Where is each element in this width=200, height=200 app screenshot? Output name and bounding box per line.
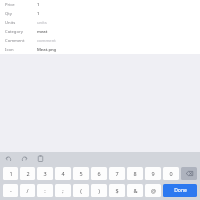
staticText: ( <box>80 187 82 194</box>
button[interactable]: ; <box>55 184 71 197</box>
button[interactable]: Done <box>163 184 197 197</box>
staticText: Comment <box>5 38 37 44</box>
staticText: 5 <box>79 170 83 177</box>
button[interactable]: ( <box>73 184 89 197</box>
button[interactable]: Undo <box>4 154 13 163</box>
staticText: Category <box>5 29 37 35</box>
button[interactable]: 7 <box>109 167 125 180</box>
staticText: 1 <box>9 170 13 177</box>
staticText: 9 <box>151 170 155 177</box>
staticText: @ <box>151 187 156 194</box>
button[interactable]: 4 <box>55 167 71 180</box>
button[interactable]: : <box>37 184 53 197</box>
button[interactable]: 5 <box>73 167 89 180</box>
button[interactable]: Units <box>0 18 200 27</box>
staticText: 6 <box>97 170 101 177</box>
button[interactable]: Redo <box>20 154 29 163</box>
button[interactable]: Icon <box>0 45 200 54</box>
staticText: / <box>26 187 29 194</box>
button[interactable]: 9 <box>145 167 161 180</box>
staticText: 7 <box>115 170 119 177</box>
staticText: 3 <box>43 170 47 177</box>
button[interactable]: Category <box>0 27 200 36</box>
staticText: - <box>10 187 12 194</box>
staticText: 8 <box>133 170 137 177</box>
button[interactable]: ) <box>91 184 107 197</box>
staticText: Qty <box>5 11 37 17</box>
button[interactable]: Price <box>0 0 200 9</box>
staticText: Meat.png <box>37 47 57 53</box>
button[interactable]: Qty <box>0 9 200 18</box>
staticText: & <box>133 187 138 194</box>
button[interactable]: & <box>127 184 143 197</box>
button[interactable]: Backspace <box>181 167 197 180</box>
button[interactable]: Comment <box>0 36 200 45</box>
button[interactable]: 2 <box>20 167 35 180</box>
staticText: 0 <box>169 170 173 177</box>
button[interactable]: @ <box>145 184 161 197</box>
staticText: ) <box>98 187 100 194</box>
staticText: meat <box>37 29 48 35</box>
button[interactable]: $ <box>109 184 125 197</box>
staticText: Units <box>5 20 37 26</box>
button[interactable]: Paste <box>36 154 45 163</box>
staticText: $ <box>115 187 119 194</box>
staticText: 1 <box>37 2 40 8</box>
button[interactable]: 6 <box>91 167 107 180</box>
button[interactable]: 0 <box>163 167 179 180</box>
button[interactable]: / <box>20 184 35 197</box>
button[interactable]: - <box>3 184 18 197</box>
staticText: 2 <box>26 170 30 177</box>
staticText: 4 <box>61 170 65 177</box>
staticText: Price <box>5 2 37 8</box>
staticText: Icon <box>5 47 37 53</box>
button[interactable]: 8 <box>127 167 143 180</box>
staticText: comment <box>37 38 56 44</box>
staticText: units <box>37 20 47 26</box>
staticText: Done <box>174 187 187 194</box>
staticText: ; <box>62 187 64 194</box>
staticText: : <box>44 187 46 194</box>
staticText: 1 <box>37 11 40 17</box>
button[interactable]: 3 <box>37 167 53 180</box>
button[interactable]: 1 <box>3 167 18 180</box>
